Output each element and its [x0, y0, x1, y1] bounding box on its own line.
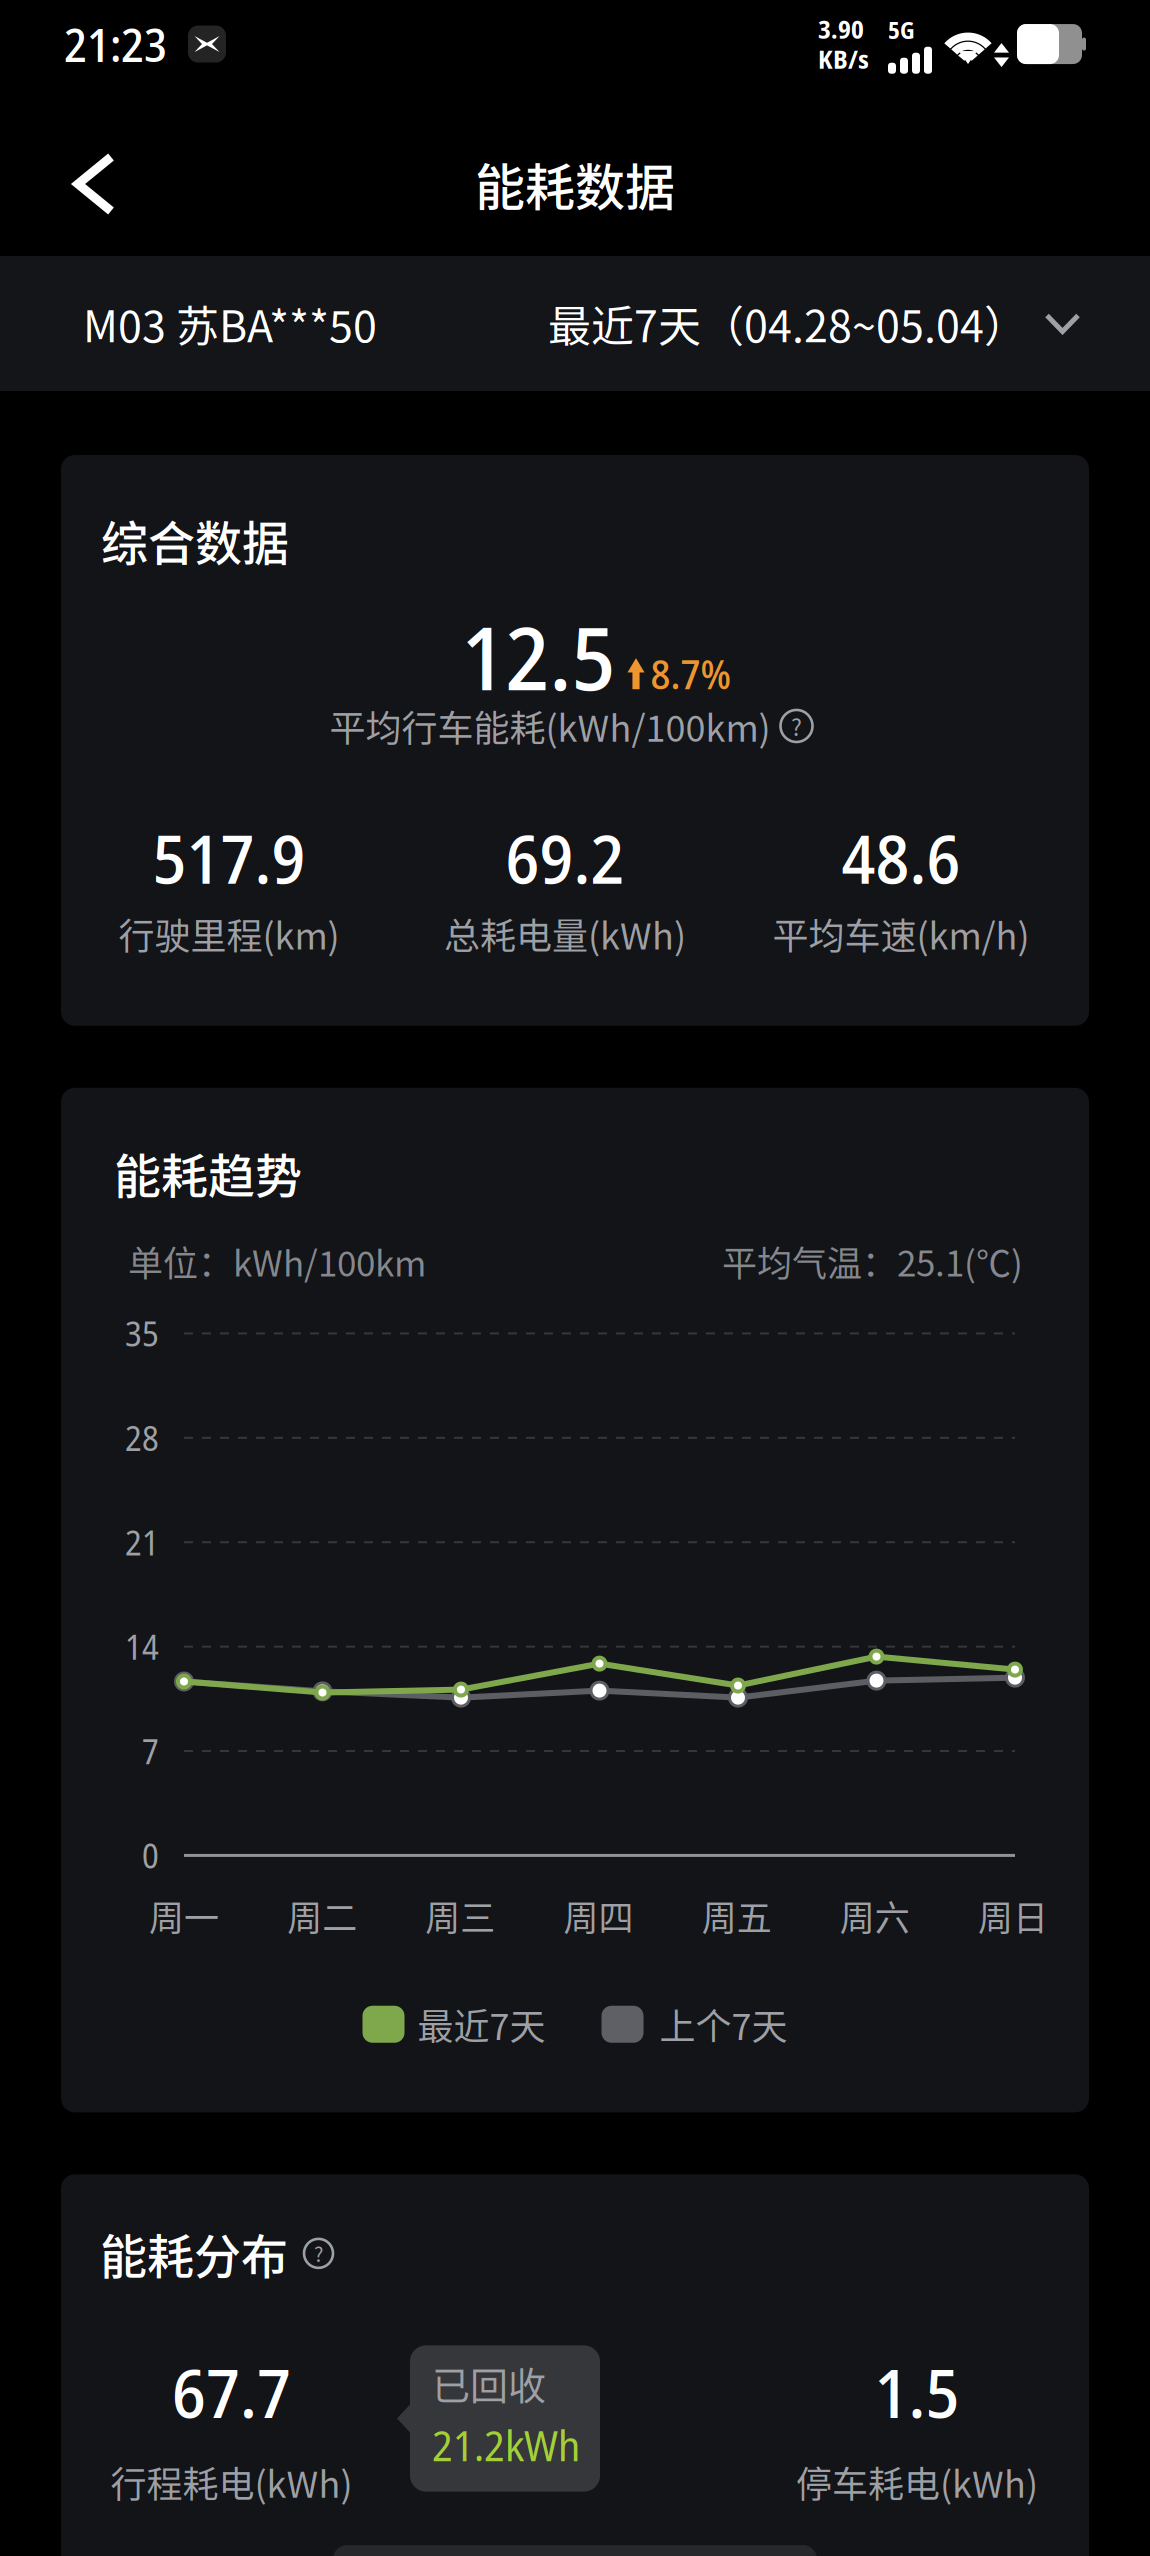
staticText: 周四: [563, 1890, 633, 1941]
staticText: 单位：kWh/100km: [128, 1236, 426, 1286]
staticText: 能耗数据: [475, 148, 675, 220]
staticText: 3.90: [818, 12, 864, 46]
staticText: 周日: [978, 1890, 1048, 1941]
staticText: 总耗电量(kWh): [444, 908, 686, 960]
staticText: 14: [125, 1623, 159, 1670]
staticText: ?: [314, 2239, 323, 2268]
staticText: 平均行车能耗(kWh/100km): [329, 700, 770, 752]
staticText: 21.2kWh: [432, 2416, 580, 2474]
staticText: 69.2: [505, 811, 624, 904]
staticText: 周五: [702, 1890, 772, 1941]
staticText: 8.7%: [650, 646, 730, 701]
staticText: 周二: [287, 1890, 357, 1941]
staticText: 517.9: [152, 811, 305, 904]
staticText: 平均气温：25.1(℃): [722, 1236, 1023, 1286]
button[interactable]: M03 苏BA***50: [83, 268, 377, 379]
staticText: 能耗趋势: [114, 1139, 302, 1207]
staticText: M03 苏BA***50: [83, 292, 377, 355]
staticText: 最近7天（04.28~05.04）: [548, 292, 1027, 355]
staticText: 7: [142, 1728, 159, 1774]
staticText: 能耗分布: [100, 2219, 288, 2287]
staticText: 21:23: [64, 13, 167, 75]
staticText: 周一: [149, 1890, 219, 1941]
staticText: 0: [142, 1832, 159, 1879]
staticText: 67.7: [172, 2345, 291, 2438]
button[interactable]: Back: [0, 123, 151, 245]
staticText: 最近7天: [417, 1998, 545, 2050]
staticText: 28: [125, 1415, 159, 1461]
staticText: 5G: [888, 14, 915, 46]
staticText: 21: [125, 1519, 159, 1565]
staticText: 48.6: [841, 811, 960, 904]
button[interactable]: 最近7天（04.28~05.04）: [548, 268, 1078, 379]
staticText: KB/s: [818, 42, 869, 76]
staticText: 综合数据: [101, 506, 289, 574]
staticText: 停车耗电(kWh): [796, 2456, 1038, 2508]
staticText: 上个7天: [659, 1998, 787, 2050]
staticText: 行程耗电(kWh): [110, 2456, 352, 2508]
staticText: 平均车速(km/h): [772, 908, 1029, 960]
staticText: ?: [791, 709, 802, 743]
staticText: 周三: [425, 1890, 495, 1941]
button[interactable]: About average driving consumption: [780, 710, 812, 742]
staticText: 12.5: [461, 596, 615, 716]
staticText: 已回收: [432, 2355, 546, 2410]
staticText: 行驶里程(km): [118, 908, 339, 960]
button[interactable]: About energy distribution: [304, 2239, 333, 2268]
staticText: 35: [125, 1310, 159, 1357]
staticText: 周六: [840, 1890, 910, 1941]
staticText: 1.5: [874, 2345, 959, 2438]
